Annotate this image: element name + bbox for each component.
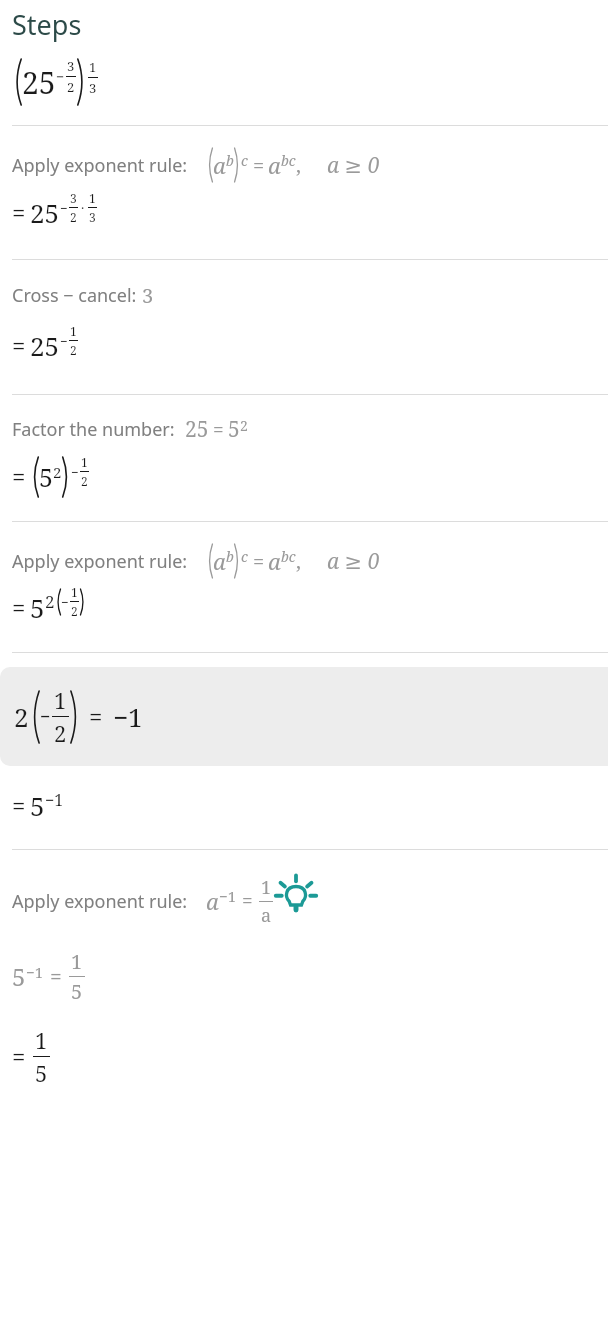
staticText: 25 — [22, 62, 56, 103]
staticText: a — [206, 886, 219, 916]
staticText: 1 — [89, 190, 96, 206]
staticText: bc — [281, 547, 296, 566]
staticText: 1 — [54, 685, 67, 715]
staticText: 25 — [185, 415, 209, 444]
staticText: 1 — [89, 58, 97, 76]
button[interactable]: Apply exponent rule: — [0, 126, 608, 259]
staticText: c — [241, 151, 248, 170]
staticText: 2 — [14, 699, 29, 734]
staticText: a — [268, 546, 281, 576]
staticText: − — [61, 593, 69, 611]
staticText: Apply exponent rule: — [12, 153, 188, 178]
staticText: b — [226, 151, 234, 170]
staticText: −1 — [26, 962, 44, 982]
staticText: = — [12, 1040, 26, 1073]
staticText: 3 — [89, 209, 96, 225]
staticText: 2 — [67, 78, 75, 96]
staticText: 5 — [35, 1058, 48, 1088]
button[interactable]: Apply exponent rule: — [0, 522, 608, 652]
staticText: 2 — [53, 462, 62, 482]
staticText: 25 — [30, 195, 60, 230]
staticText: 5 — [228, 415, 240, 444]
staticText: − — [56, 67, 65, 86]
staticText: , — [296, 548, 301, 575]
staticText: = — [12, 591, 26, 624]
staticText: · — [81, 199, 85, 217]
staticText: 5 — [39, 460, 53, 494]
staticText: −1 — [45, 789, 64, 811]
staticText: = — [12, 460, 26, 493]
staticText: Apply exponent rule: — [12, 889, 188, 914]
staticText: Factor the number: — [12, 417, 175, 442]
staticText: 1 — [70, 323, 77, 339]
staticText: 25 — [30, 328, 60, 363]
staticText: = — [253, 152, 265, 179]
button[interactable]: Cross − cancel: — [0, 260, 608, 394]
staticText: 2 — [71, 603, 78, 619]
staticText: − — [40, 704, 51, 729]
button[interactable]: Apply exponent rule: — [0, 850, 608, 1108]
staticText: b — [226, 547, 234, 566]
staticText: 2 — [45, 590, 55, 613]
staticText: 5 — [71, 978, 83, 1005]
staticText: = — [89, 700, 103, 733]
staticText: c — [241, 547, 248, 566]
staticText: − — [71, 463, 79, 481]
staticText: , — [296, 152, 301, 179]
staticText: a — [261, 903, 272, 928]
staticText: a ≥ 0 — [327, 151, 380, 180]
staticText: −1 — [219, 886, 237, 906]
staticText: −1 — [113, 699, 143, 734]
staticText: 2 — [81, 473, 88, 489]
staticText: 5 — [30, 590, 45, 625]
staticText: = — [12, 789, 26, 822]
button[interactable]: Show hint — [274, 872, 318, 916]
staticText: 2 — [70, 342, 77, 358]
staticText: 3 — [67, 57, 75, 75]
staticText: = — [242, 888, 253, 914]
staticText: = — [213, 417, 224, 443]
staticText: 3 — [142, 282, 154, 309]
staticText: = — [12, 196, 26, 229]
staticText: Apply exponent rule: — [12, 549, 188, 574]
staticText: a — [213, 150, 226, 180]
staticText: = — [50, 962, 62, 991]
staticText: Steps — [12, 6, 82, 43]
staticText: 2 — [54, 718, 67, 748]
staticText: 3 — [70, 190, 77, 206]
staticText: 1 — [81, 454, 88, 470]
staticText: = — [253, 548, 265, 575]
button[interactable]: Factor the number: — [0, 395, 608, 521]
staticText: a — [213, 546, 226, 576]
staticText: Cross − cancel: — [12, 283, 142, 308]
staticText: − — [60, 199, 68, 217]
staticText: bc — [281, 151, 296, 170]
staticText: 2 — [240, 416, 248, 435]
staticText: a — [268, 150, 281, 180]
staticText: 5 — [12, 960, 26, 993]
staticText: 1 — [261, 875, 272, 900]
staticText: = — [12, 329, 26, 362]
staticText: 1 — [71, 584, 78, 600]
staticText: 1 — [35, 1025, 48, 1055]
staticText: 5 — [30, 788, 45, 823]
staticText: − — [60, 332, 68, 350]
staticText: 1 — [71, 948, 83, 975]
button[interactable]: 2 — [0, 667, 608, 766]
staticText: 2 — [70, 209, 77, 225]
staticText: a ≥ 0 — [327, 547, 380, 576]
staticText: 3 — [89, 79, 97, 97]
